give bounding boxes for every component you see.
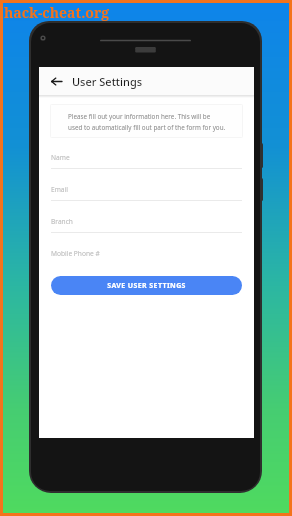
button[interactable]: Branch xyxy=(39,211,254,243)
button[interactable]: Email xyxy=(39,179,254,211)
staticText: hack-cheat.org xyxy=(4,3,110,22)
staticText: User Settings xyxy=(72,74,143,89)
staticText: Email xyxy=(51,185,68,194)
staticText: Mobile Phone # xyxy=(51,249,100,258)
staticText: Branch xyxy=(51,217,73,226)
button[interactable]: Back xyxy=(47,72,65,90)
button[interactable]: Mobile Phone # xyxy=(39,243,254,264)
button[interactable]: Name xyxy=(39,147,254,179)
staticText: SAVE USER SETTINGS xyxy=(107,281,186,291)
staticText: Please fill out your information here. T… xyxy=(68,112,226,131)
button[interactable]: SAVE USER SETTINGS xyxy=(51,276,242,295)
staticText: Name xyxy=(51,153,70,162)
